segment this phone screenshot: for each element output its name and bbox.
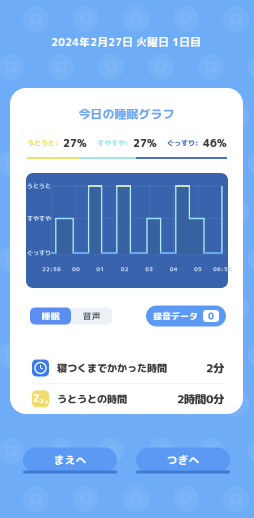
staticText: つぎへ [166,453,199,467]
staticText: 46% [203,136,227,150]
staticText: ぐっすり: [167,138,198,148]
button[interactable]: 音声 [71,307,112,324]
staticText: Z [33,391,40,406]
staticText: 2024年2月27日 火曜日 1日目 [51,35,201,49]
button[interactable]: 睡眠 [30,307,71,324]
staticText: 27% [133,136,157,150]
staticText: 音声 [82,310,100,322]
staticText: うとうとの時間 [57,392,127,406]
staticText: z [40,395,45,406]
staticText: 2分 [206,360,224,376]
staticText: 今日の睡眠グラフ [78,106,174,122]
button[interactable]: まえへ [23,447,117,472]
staticText: うとうと: [27,138,58,148]
staticText: まえへ [53,453,86,467]
staticText: 睡眠 [41,310,59,322]
staticText: 寝つくまでかかった時間 [57,361,167,375]
staticText: z [45,397,48,406]
staticText: 0 [208,310,214,322]
button[interactable]: Z [32,384,224,414]
button[interactable]: 録音データ [146,305,226,326]
button[interactable]: つぎへ [136,447,230,472]
staticText: 27% [63,136,87,150]
staticText: 03 [145,265,153,273]
staticText: 02 [121,265,129,273]
staticText: うとうと [27,182,51,190]
staticText: 01 [96,265,104,273]
button[interactable]: 寝つくまでかかった時間 [32,353,224,383]
staticText: すやすや: [97,138,128,148]
staticText: 00 [72,265,80,273]
staticText: 2時間0分 [177,391,224,407]
staticText: 05 [194,265,202,273]
staticText: 04 [170,265,178,273]
staticText: 06:58 [213,265,232,273]
staticText: ぐっすり [27,249,51,257]
staticText: すやすや [27,214,51,223]
staticText: 22:58 [42,265,61,273]
staticText: 録音データ [153,310,198,322]
